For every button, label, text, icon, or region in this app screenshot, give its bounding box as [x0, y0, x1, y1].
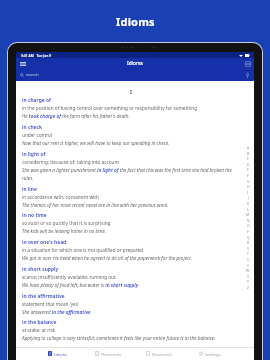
- staticText: in a situation for which one is not qual…: [22, 246, 144, 254]
- button[interactable]: in no time: [22, 211, 240, 235]
- staticText: U: [247, 257, 250, 262]
- staticText: in the position of having control over s…: [22, 104, 198, 112]
- staticText: Flashcards: [101, 352, 122, 358]
- staticText: The themes of her most recent novel are …: [22, 201, 169, 209]
- staticText: Q: [247, 235, 250, 240]
- staticText: She was given a lighter punishment in li…: [22, 166, 240, 182]
- staticText: in over one's head: [22, 238, 67, 246]
- staticText: considering; because of; taking into acc…: [22, 158, 120, 166]
- button[interactable]: in over one's head: [22, 238, 240, 262]
- staticText: F: [247, 173, 249, 178]
- staticText: at stake; at risk: [22, 326, 56, 334]
- staticText: W: [246, 268, 250, 273]
- staticText: C: [247, 156, 250, 161]
- staticText: under control: [22, 131, 53, 139]
- staticText: G: [247, 179, 250, 184]
- button[interactable]: in check: [22, 123, 240, 147]
- staticText: O: [247, 223, 250, 228]
- staticText: I: [130, 88, 132, 96]
- staticText: Y: [247, 279, 249, 284]
- staticText: in line: [22, 185, 37, 193]
- button[interactable]: in short supply: [22, 265, 240, 289]
- staticText: R: [247, 240, 250, 245]
- staticText: Idioms: [116, 14, 155, 29]
- staticText: P: [247, 229, 250, 234]
- staticText: in the affirmative: [22, 292, 65, 300]
- staticText: H: [247, 184, 250, 189]
- staticText: in the balance: [22, 318, 57, 326]
- staticText: L: [247, 207, 249, 212]
- staticText: She answered in the affirmative: [22, 308, 91, 316]
- staticText: in accordance with; consistent with: [22, 193, 99, 201]
- button[interactable]: in charge of: [22, 96, 240, 120]
- staticText: Bookmark: [152, 352, 172, 358]
- staticText: V: [247, 263, 250, 268]
- staticText: We got in over his head when he agreed t…: [22, 254, 192, 262]
- staticText: A: [247, 145, 250, 150]
- staticText: I: [247, 190, 249, 195]
- staticText: in light of: [22, 150, 46, 158]
- button[interactable]: Voice search: [243, 71, 251, 79]
- staticText: in no time: [22, 211, 47, 219]
- button[interactable]: Alphabet index: [243, 145, 253, 290]
- staticText: M: [246, 212, 250, 217]
- button[interactable]: Bookmark: [133, 351, 184, 360]
- staticText: Z: [247, 285, 249, 290]
- staticText: in charge of: [22, 96, 51, 104]
- staticText: Applying to college is very stressful; s…: [22, 334, 216, 342]
- staticText: Now that our rent is higher, we will hav…: [22, 139, 170, 147]
- button[interactable]: in light of: [22, 150, 240, 182]
- staticText: Idioms: [54, 352, 68, 358]
- button[interactable]: search: [20, 72, 254, 78]
- staticText: scarce; insufficiently available; runnin…: [22, 273, 116, 281]
- button[interactable]: Flashcards: [83, 351, 133, 360]
- staticText: so soon or so quickly that it is surpris…: [22, 219, 111, 227]
- staticText: Idioms: [127, 60, 143, 67]
- staticText: K: [247, 201, 250, 206]
- staticText: We have plenty of food left, but water i…: [22, 281, 140, 289]
- staticText: 9:41 AM Tue Jan 9: [21, 53, 52, 58]
- button[interactable]: in the balance: [22, 318, 240, 342]
- button[interactable]: in line: [22, 185, 240, 209]
- button[interactable]: in the affirmative: [22, 292, 240, 316]
- button[interactable]: Open navigation menu: [18, 59, 28, 69]
- staticText: search: [26, 72, 39, 78]
- staticText: statement that mean 'yes': [22, 300, 80, 308]
- staticText: He took charge of the farm after his fat…: [22, 112, 130, 120]
- staticText: The kids will be leaving home in no time…: [22, 227, 107, 235]
- staticText: X: [247, 274, 249, 279]
- staticText: J: [248, 195, 249, 200]
- staticText: in check: [22, 123, 43, 131]
- staticText: E: [247, 167, 249, 172]
- staticText: in short supply: [22, 265, 59, 273]
- staticText: T: [247, 251, 249, 256]
- staticText: B: [247, 151, 250, 156]
- staticText: N: [247, 218, 250, 223]
- staticText: D: [247, 162, 250, 167]
- staticText: S: [247, 246, 249, 251]
- button[interactable]: Idioms: [33, 351, 83, 360]
- button[interactable]: Settings: [243, 59, 252, 68]
- button[interactable]: Settings: [184, 351, 235, 360]
- staticText: Settings: [205, 352, 221, 358]
